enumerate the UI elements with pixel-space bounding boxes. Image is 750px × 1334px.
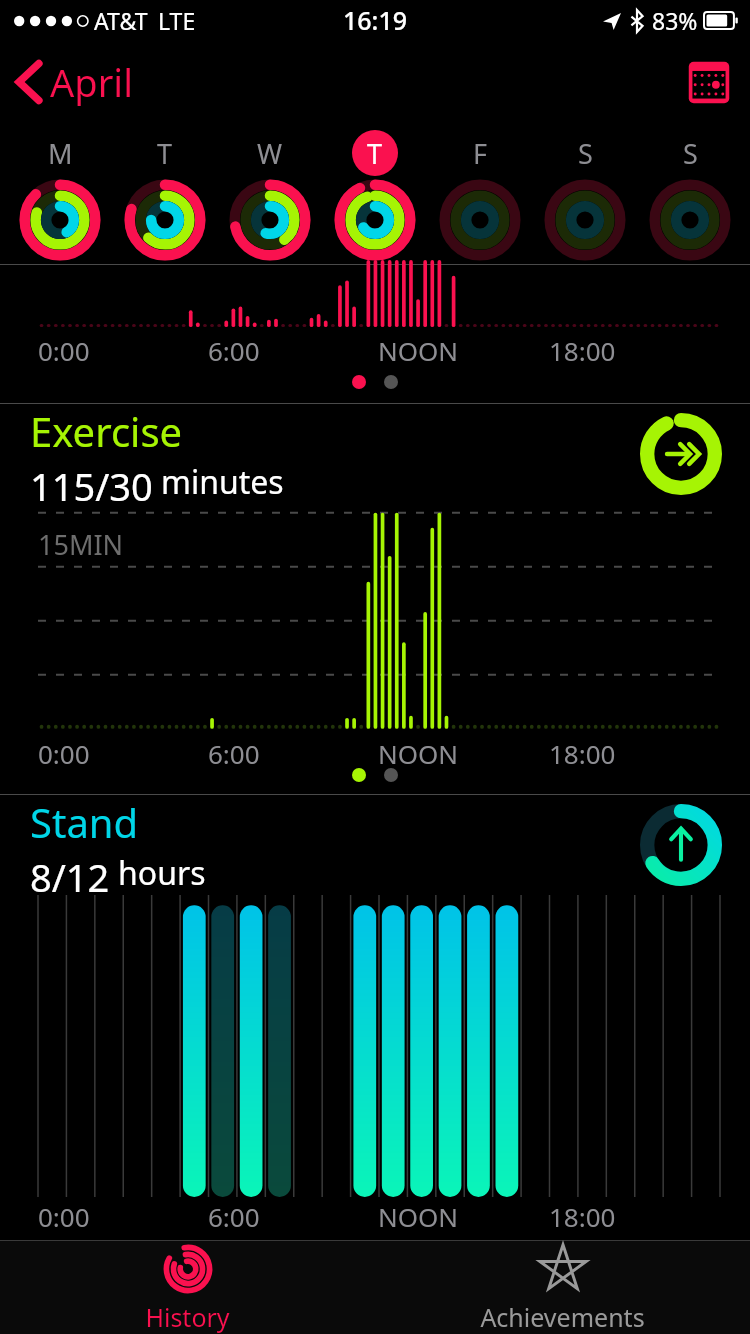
- staticText: M: [48, 135, 73, 172]
- button[interactable]: M: [8, 124, 112, 264]
- staticText: Exercise: [30, 404, 183, 458]
- staticText: 18:00: [549, 1199, 616, 1234]
- staticText: hours: [118, 851, 206, 895]
- staticText: 18:00: [549, 736, 616, 771]
- staticText: NOON: [378, 736, 459, 771]
- staticText: T: [157, 135, 173, 172]
- button[interactable]: S: [532, 124, 637, 264]
- staticText: History: [145, 1300, 230, 1334]
- staticText: 6:00: [208, 736, 260, 771]
- staticText: NOON: [378, 1199, 459, 1234]
- staticText: 6:00: [208, 1199, 260, 1234]
- button[interactable]: History: [0, 1241, 375, 1334]
- staticText: T: [367, 135, 383, 172]
- button[interactable]: Exercise details: [640, 413, 722, 495]
- staticText: 8/12: [30, 851, 110, 895]
- staticText: 18:00: [549, 333, 616, 368]
- staticText: 6:00: [208, 333, 260, 368]
- staticText: 16:19: [343, 3, 408, 37]
- staticText: 0:00: [38, 736, 90, 771]
- staticText: NOON: [378, 333, 459, 368]
- staticText: 0:00: [38, 1199, 90, 1234]
- button[interactable]: T: [322, 124, 427, 264]
- staticText: Stand: [30, 795, 139, 849]
- staticText: 0:00: [38, 333, 90, 368]
- staticText: S: [578, 135, 593, 172]
- button[interactable]: April: [16, 56, 133, 108]
- staticText: minutes: [161, 460, 284, 504]
- staticText: 15MIN: [38, 526, 124, 563]
- button[interactable]: W: [217, 124, 322, 264]
- staticText: AT&T: [94, 5, 148, 36]
- staticText: S: [683, 135, 698, 172]
- staticText: April: [50, 56, 133, 108]
- button[interactable]: Calendar: [686, 59, 732, 105]
- staticText: LTE: [158, 5, 196, 36]
- button[interactable]: T: [112, 124, 217, 264]
- staticText: Achievements: [480, 1300, 645, 1334]
- staticText: F: [473, 135, 488, 172]
- staticText: 115/30: [30, 460, 153, 504]
- staticText: W: [257, 135, 283, 172]
- button[interactable]: Stand details: [640, 804, 722, 886]
- button[interactable]: F: [427, 124, 532, 264]
- button[interactable]: Achievements: [375, 1241, 750, 1334]
- button[interactable]: S: [637, 124, 742, 264]
- staticText: 83%: [652, 5, 698, 36]
